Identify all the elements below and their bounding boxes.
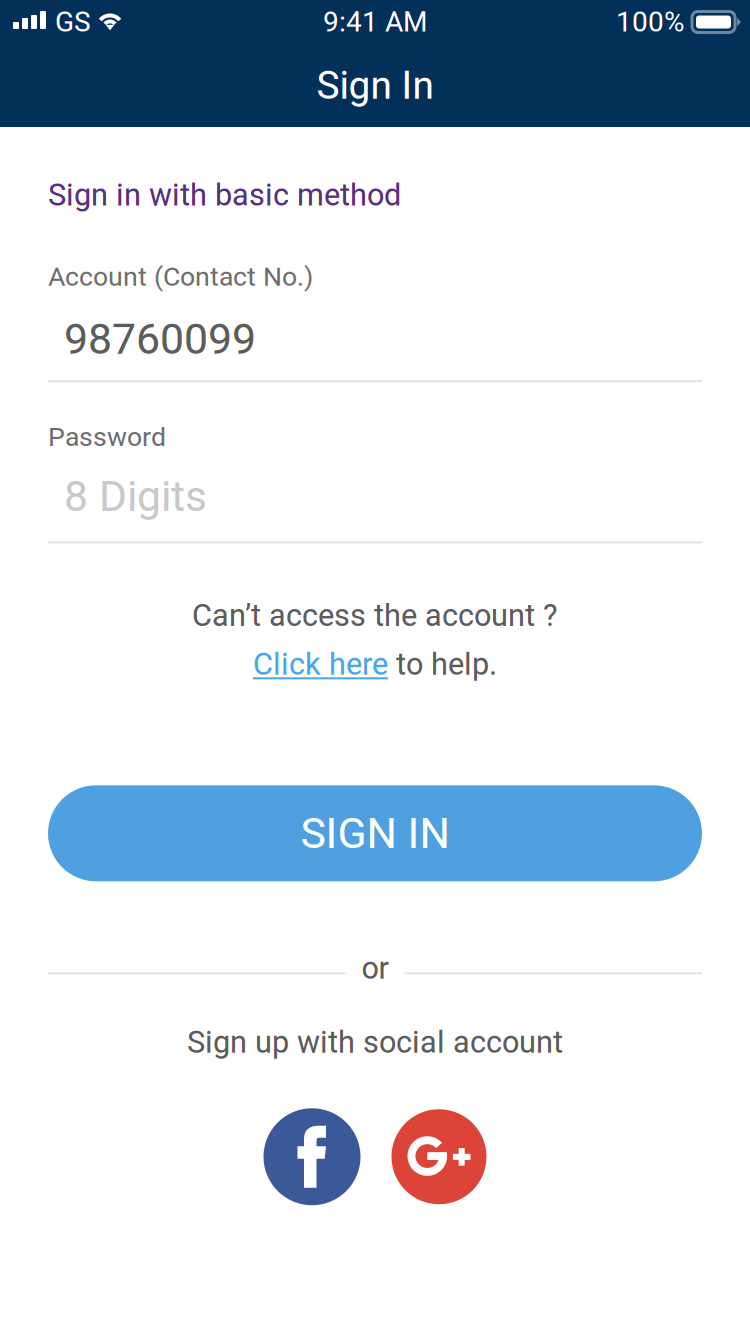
staticText: 98760099	[64, 314, 256, 364]
staticText: Can’t access the account ?	[192, 597, 558, 633]
staticText: 9:41 AM	[323, 6, 427, 38]
staticText: 100%	[616, 6, 685, 38]
staticText: Account (Contact No.)	[48, 261, 313, 292]
staticText: 8 Digits	[64, 471, 207, 521]
button[interactable]: Sign up with Google Plus	[391, 1109, 486, 1204]
staticText: Click here	[253, 646, 388, 682]
staticText: Sign In	[316, 63, 433, 108]
staticText: Password	[48, 421, 166, 452]
staticText: Sign up with social account	[187, 1024, 563, 1060]
staticText: Sign in with basic method	[48, 177, 401, 213]
staticText: SIGN IN	[300, 808, 449, 858]
staticText: GS	[55, 6, 91, 38]
button[interactable]: Sign up with Facebook	[263, 1108, 360, 1205]
button[interactable]: SIGN IN	[48, 785, 702, 881]
staticText: or	[361, 950, 388, 986]
staticText: to help.	[388, 646, 497, 682]
